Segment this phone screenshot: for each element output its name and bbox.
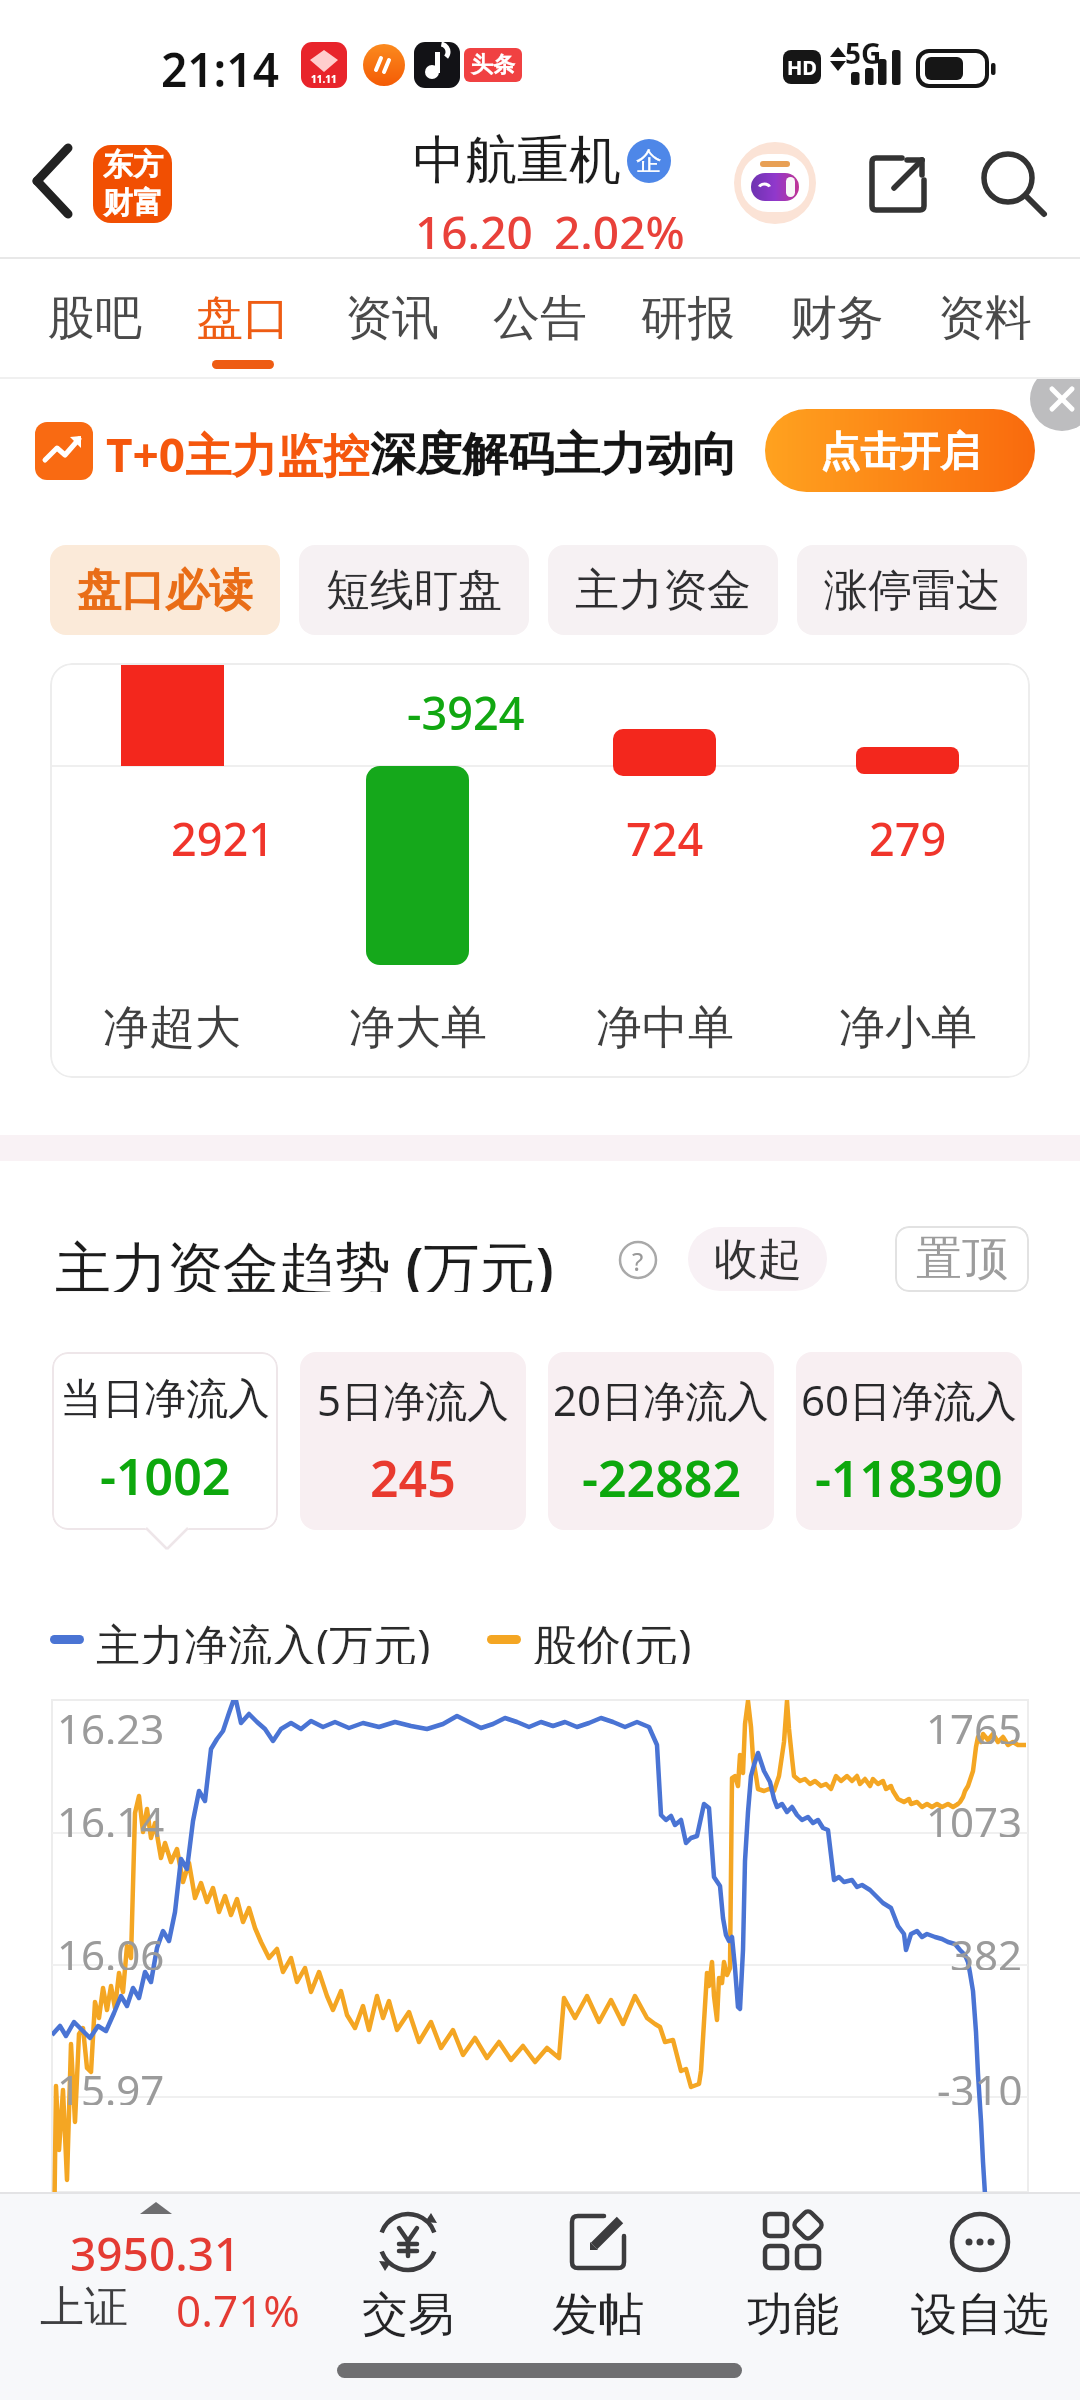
staticText: 股价(元) (533, 1614, 692, 1664)
staticText: 点击开启 (820, 426, 980, 476)
button[interactable] (734, 142, 816, 224)
button[interactable]: 60日净流入 (796, 1352, 1022, 1530)
staticText: 当日净流入 (60, 1373, 270, 1426)
staticText: 财务 (790, 289, 884, 348)
staticText: 15.97 (57, 2061, 165, 2105)
staticText: 研报 (641, 289, 735, 348)
button[interactable]: 资料 (938, 259, 1032, 377)
button[interactable]: 功能 (718, 2200, 868, 2360)
button[interactable]: T+0主力监控 (0, 379, 1080, 530)
staticText: 主力资金趋势 (万元) (55, 1228, 554, 1292)
staticText: 发帖 (552, 2286, 644, 2344)
staticText: 0.71% (176, 2280, 300, 2328)
staticText: 股吧 (48, 289, 142, 348)
staticText: 东方 (103, 146, 163, 184)
button[interactable]: 发帖 (523, 2200, 673, 2360)
button[interactable]: 置顶 (895, 1226, 1029, 1292)
staticText: 11.11 (311, 72, 337, 86)
button[interactable] (978, 148, 1050, 220)
staticText: 主力净流入(万元) (96, 1614, 431, 1664)
staticText: 1765 (926, 1700, 1023, 1744)
staticText: ? (632, 1243, 644, 1278)
staticText: 20日净流入 (553, 1371, 770, 1428)
button[interactable]: 研报 (641, 259, 735, 377)
staticText: 盘口 (196, 289, 290, 348)
staticText: 主力资金 (575, 563, 751, 618)
staticText: 16.23 (57, 1700, 165, 1744)
staticText: 1073 (926, 1793, 1023, 1837)
staticText: 涨停雷达 (824, 563, 1000, 618)
button[interactable]: 交易 (333, 2200, 483, 2360)
staticText: 财富 (103, 184, 163, 222)
staticText: 5日净流入 (317, 1371, 510, 1428)
staticText: 资讯 (345, 289, 439, 348)
staticText: 资料 (938, 289, 1032, 348)
button[interactable]: 收起 (688, 1227, 827, 1291)
staticText: 21:14 (161, 38, 279, 94)
staticText: 16.06 (57, 1926, 165, 1970)
staticText: 2921 (171, 808, 274, 858)
button[interactable]: 盘口 (196, 259, 290, 377)
staticText: 245 (370, 1444, 456, 1512)
staticText: -118390 (815, 1444, 1003, 1512)
staticText: 深度解码主力动向 (370, 426, 738, 484)
staticText: -22882 (582, 1444, 741, 1512)
staticText: -3924 (407, 682, 525, 732)
staticText: 16.14 (57, 1793, 165, 1837)
button[interactable]: 20日净流入 (548, 1352, 774, 1530)
staticText: 公告 (493, 289, 587, 348)
button[interactable]: 3950.31 (0, 2192, 330, 2362)
staticText: 净小单 (839, 999, 977, 1051)
staticText: 企 (636, 145, 662, 178)
staticText: 上证 (40, 2280, 128, 2328)
staticText: 收起 (714, 1232, 802, 1287)
button[interactable] (20, 145, 90, 217)
staticText: -310 (937, 2061, 1023, 2105)
staticText: 60日净流入 (801, 1371, 1018, 1428)
staticText: T+0主力监控 (106, 423, 370, 486)
button[interactable]: 当日净流入 (52, 1352, 278, 1530)
staticText: HD (787, 54, 817, 81)
button[interactable]: 财务 (790, 259, 884, 377)
staticText: 置顶 (916, 1230, 1008, 1288)
staticText: 382 (950, 1926, 1023, 1970)
staticText: 279 (869, 808, 947, 858)
staticText: 盘口必读 (77, 563, 253, 618)
button[interactable]: 涨停雷达 (797, 545, 1027, 635)
button[interactable]: 5日净流入 (300, 1352, 526, 1530)
button[interactable]: 点击开启 (765, 409, 1035, 492)
button[interactable]: 主力资金 (548, 545, 778, 635)
staticText: 3950.31 (70, 2222, 241, 2272)
staticText: 16.20 (415, 201, 533, 249)
staticText: -1002 (100, 1442, 231, 1510)
staticText: 短线盯盘 (326, 563, 502, 618)
staticText: 交易 (362, 2286, 454, 2344)
button[interactable]: 公告 (493, 259, 587, 377)
button[interactable] (860, 148, 932, 220)
button[interactable]: 资讯 (345, 259, 439, 377)
staticText: 2.02% (554, 201, 685, 249)
staticText: 中航重机 (413, 128, 621, 188)
button[interactable]: 设自选 (905, 2200, 1055, 2360)
staticText: 净超大 (103, 999, 241, 1051)
button[interactable]: 短线盯盘 (299, 545, 529, 635)
staticText: 头条 (471, 51, 515, 79)
staticText: 设自选 (911, 2286, 1049, 2344)
staticText: 净中单 (596, 999, 734, 1051)
staticText: 724 (626, 808, 704, 858)
button[interactable]: 股吧 (48, 259, 142, 377)
staticText: 5G (845, 34, 882, 70)
staticText: 净大单 (349, 999, 487, 1051)
staticText: 功能 (747, 2286, 839, 2344)
button[interactable]: 盘口必读 (50, 545, 280, 635)
